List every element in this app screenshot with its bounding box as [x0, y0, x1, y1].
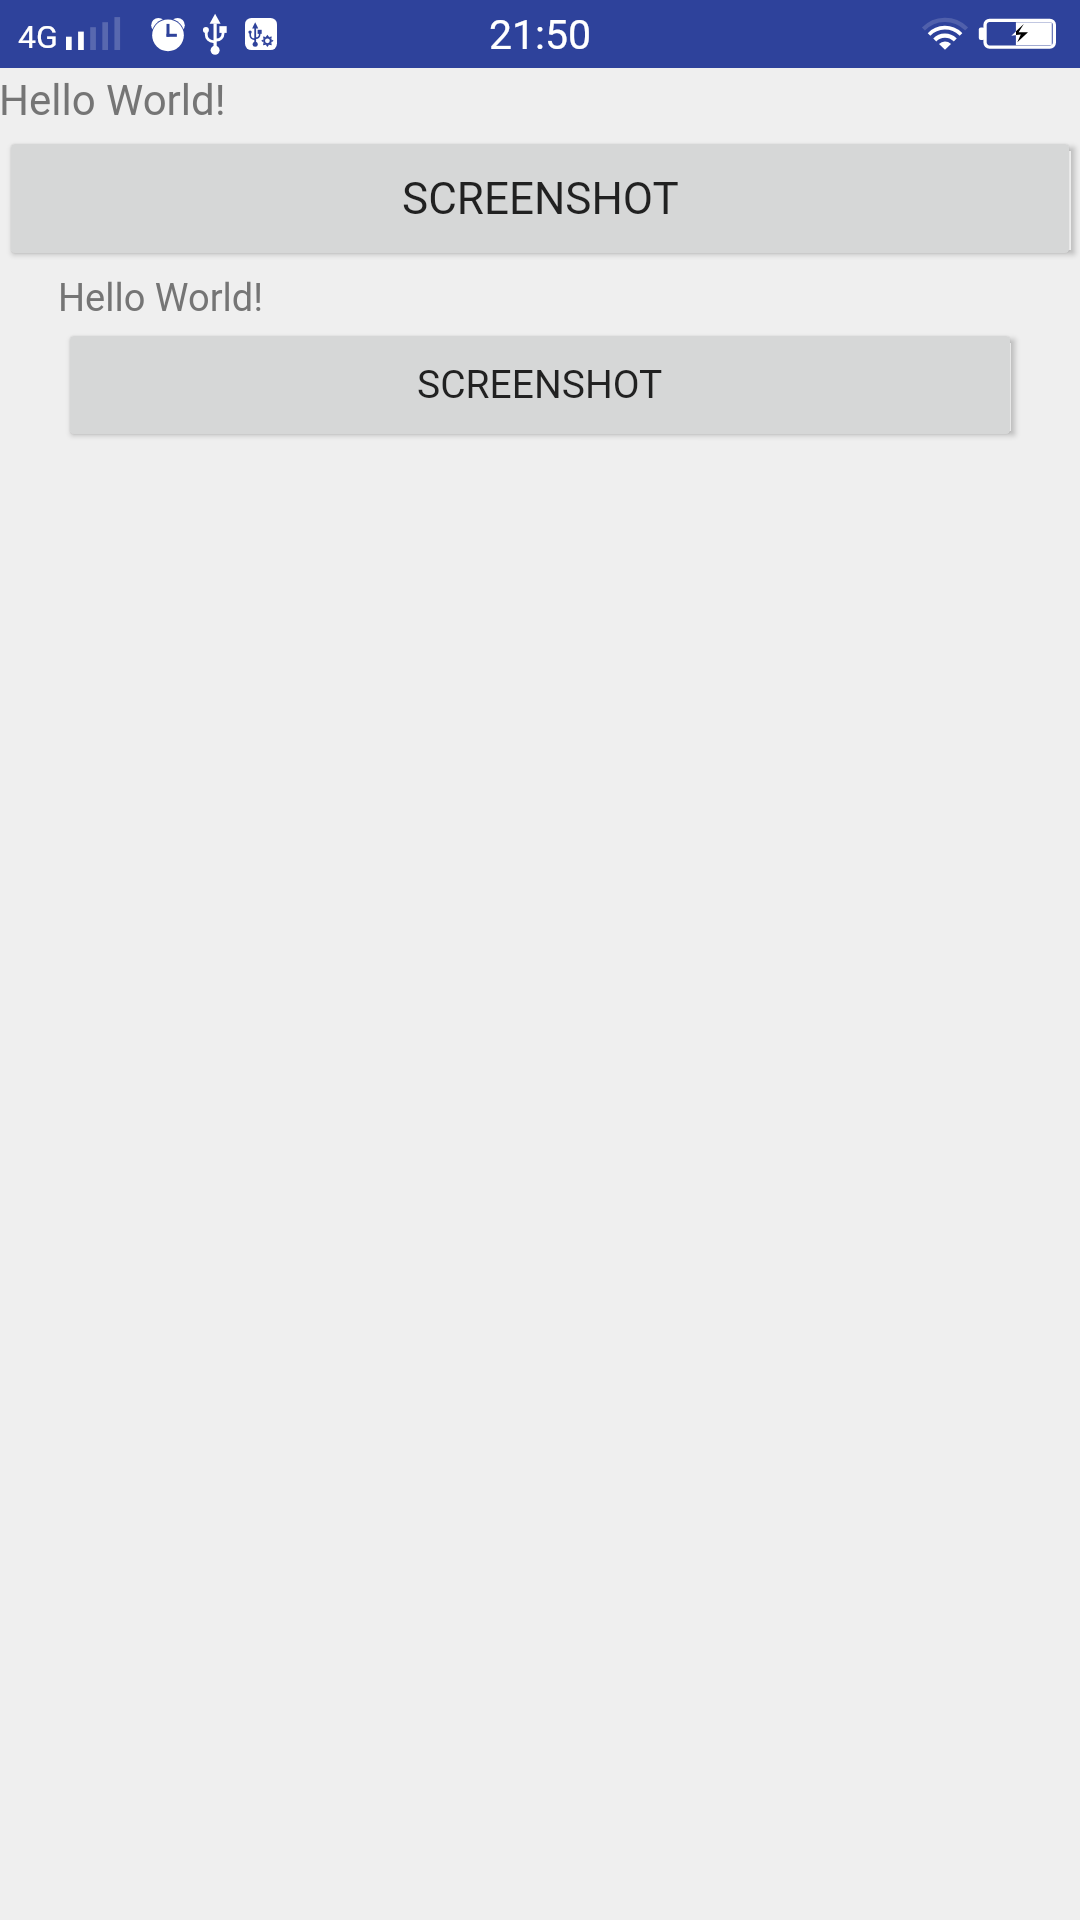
other: Mobile signal strength [66, 17, 121, 51]
staticText: 21:50 [489, 11, 592, 59]
other: Battery charging [978, 18, 1058, 50]
staticText: Hello World! [58, 276, 263, 321]
staticText: SCREENSHOT [402, 173, 679, 225]
staticText: Hello World! [0, 76, 226, 125]
other: USB connected [203, 13, 229, 56]
button[interactable]: SCREENSHOT [70, 336, 1010, 434]
staticText: 4G [18, 18, 58, 56]
staticText: SCREENSHOT [417, 362, 663, 408]
other: USB debugging [245, 18, 277, 50]
other: Alarm set [151, 15, 187, 53]
button[interactable]: SCREENSHOT [11, 144, 1069, 253]
other: Wi-Fi [921, 17, 969, 53]
